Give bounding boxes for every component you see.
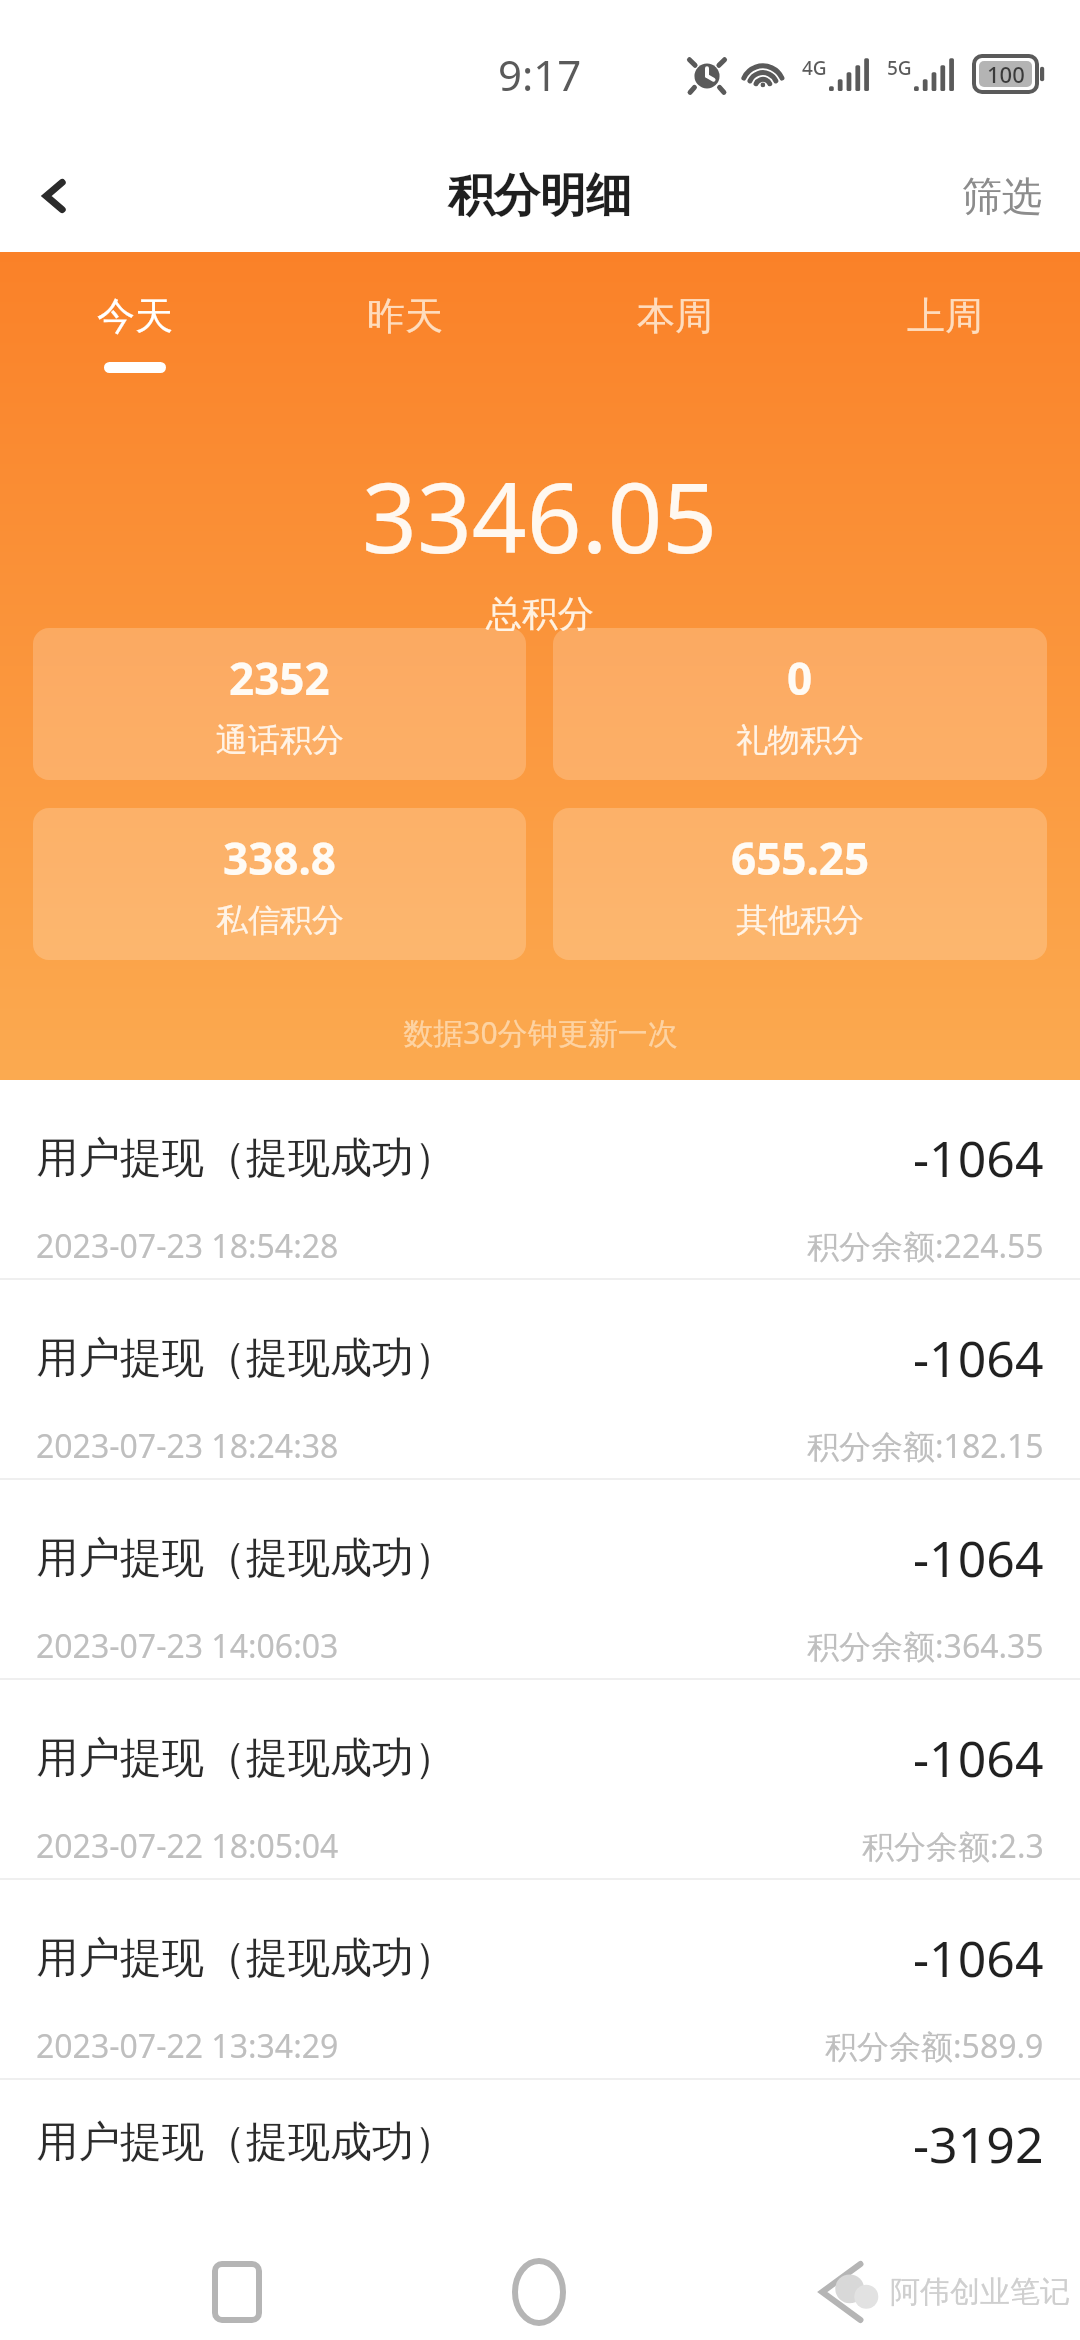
staticText: 用户提现（提现成功） xyxy=(36,1732,913,1785)
staticText: 用户提现（提现成功） xyxy=(36,1132,913,1185)
staticText: 礼物积分 xyxy=(736,720,864,760)
staticText: 5G xyxy=(887,55,912,81)
button[interactable]: 0 xyxy=(553,628,1047,780)
staticText: 2023-07-23 14:06:03 xyxy=(36,1624,807,1668)
button[interactable]: 上周 xyxy=(810,282,1080,383)
staticText: 100 xyxy=(987,59,1025,89)
button[interactable]: Recents xyxy=(172,2244,302,2340)
staticText: 积分余额:589.9 xyxy=(825,2024,1044,2068)
staticText: 私信积分 xyxy=(216,900,344,940)
staticText: 0 xyxy=(787,648,813,708)
button[interactable]: 本周 xyxy=(540,282,810,383)
staticText: 筛选 xyxy=(962,171,1042,221)
staticText: 数据30分钟更新一次 xyxy=(403,1012,678,1053)
button[interactable]: 用户提现（提现成功） xyxy=(0,1680,1080,1878)
button[interactable]: 用户提现（提现成功） xyxy=(0,1480,1080,1678)
button[interactable]: Back xyxy=(0,140,110,252)
staticText: 2023-07-22 13:34:29 xyxy=(36,2024,825,2068)
staticText: 9:17 xyxy=(498,46,582,103)
staticText: 本周 xyxy=(637,292,713,340)
staticText: 今天 xyxy=(97,292,173,340)
staticText: 用户提现（提现成功） xyxy=(36,1532,913,1585)
staticText: 其他积分 xyxy=(736,900,864,940)
staticText: 338.8 xyxy=(223,828,337,888)
staticText: 2023-07-22 18:05:04 xyxy=(36,1824,862,1868)
staticText: 通话积分 xyxy=(216,720,344,760)
button[interactable]: 用户提现（提现成功） xyxy=(0,2080,1080,2200)
button[interactable]: 筛选 xyxy=(924,140,1080,252)
staticText: 3346.05 xyxy=(362,450,718,581)
staticText: 积分余额:364.35 xyxy=(807,1624,1044,1668)
button[interactable]: Home xyxy=(474,2244,604,2340)
staticText: 昨天 xyxy=(367,292,443,340)
button[interactable]: 用户提现（提现成功） xyxy=(0,1080,1080,1278)
staticText: -1064 xyxy=(913,1124,1044,1192)
staticText: 用户提现（提现成功） xyxy=(36,1332,913,1385)
staticText: -1064 xyxy=(913,1924,1044,1992)
staticText: 用户提现（提现成功） xyxy=(36,1932,913,1985)
staticText: 积分明细 xyxy=(448,167,632,225)
staticText: 积分余额:224.55 xyxy=(807,1224,1044,1268)
staticText: -1064 xyxy=(913,1724,1044,1792)
staticText: 积分余额:2.3 xyxy=(862,1824,1044,1868)
staticText: 积分余额:182.15 xyxy=(807,1424,1044,1468)
staticText: 总积分 xyxy=(486,591,594,636)
button[interactable]: Back xyxy=(777,2244,907,2340)
button[interactable]: 今天 xyxy=(0,282,270,383)
button[interactable]: 用户提现（提现成功） xyxy=(0,1880,1080,2078)
staticText: 4G xyxy=(802,55,827,81)
staticText: 阿伟创业笔记 xyxy=(890,2273,1070,2311)
button[interactable]: 昨天 xyxy=(270,282,540,383)
button[interactable]: 用户提现（提现成功） xyxy=(0,1280,1080,1478)
staticText: -1064 xyxy=(913,1524,1044,1592)
staticText: 用户提现（提现成功） xyxy=(36,2116,913,2169)
button[interactable]: 2352 xyxy=(33,628,526,780)
button[interactable]: 655.25 xyxy=(553,808,1047,960)
staticText: 2023-07-23 18:24:38 xyxy=(36,1424,807,1468)
staticText: 655.25 xyxy=(731,828,870,888)
staticText: -1064 xyxy=(913,1324,1044,1392)
staticText: 上周 xyxy=(907,292,983,340)
staticText: 2352 xyxy=(229,648,330,708)
staticText: 2023-07-23 18:54:28 xyxy=(36,1224,807,1268)
staticText: -3192 xyxy=(913,2110,1044,2178)
button[interactable]: 338.8 xyxy=(33,808,526,960)
